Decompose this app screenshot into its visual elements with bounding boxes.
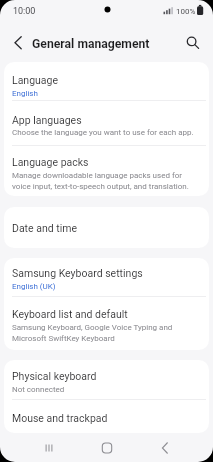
staticText: Samsung Keyboard settings (12, 267, 143, 279)
button[interactable]: Date and time (4, 207, 209, 248)
staticText: Date and time (12, 222, 78, 234)
button[interactable]: Language (4, 62, 209, 100)
staticText: Choose the language you want to use for … (12, 128, 194, 137)
button[interactable] (9, 34, 27, 52)
button[interactable]: Keyboard list and default (4, 297, 209, 350)
staticText: Language packs (12, 156, 89, 168)
button[interactable]: Language packs (4, 146, 209, 196)
button[interactable] (78, 435, 136, 460)
staticText: General management (32, 37, 150, 51)
button[interactable]: App languages (4, 101, 209, 145)
staticText: Mouse and trackpad (12, 412, 108, 424)
staticText: 10:00 (13, 6, 36, 17)
staticText: Keyboard list and default (12, 308, 128, 320)
staticText: Language (12, 74, 59, 86)
staticText: 100% (176, 7, 196, 16)
staticText: Not connected (12, 385, 65, 394)
button[interactable]: Physical keyboard (4, 360, 209, 399)
button[interactable]: Mouse and trackpad (4, 400, 209, 433)
staticText: App languages (12, 114, 82, 126)
staticText: Manage downloadable language packs used … (12, 171, 189, 191)
staticText: Samsung Keyboard, Google Voice Typing an… (12, 323, 173, 343)
staticText: Physical keyboard (12, 370, 97, 382)
button[interactable]: Samsung Keyboard settings (4, 258, 209, 296)
staticText: English (UK) (12, 282, 56, 291)
staticText: English (12, 89, 38, 98)
button[interactable] (136, 435, 194, 460)
button[interactable] (19, 435, 78, 460)
button[interactable] (184, 34, 202, 52)
